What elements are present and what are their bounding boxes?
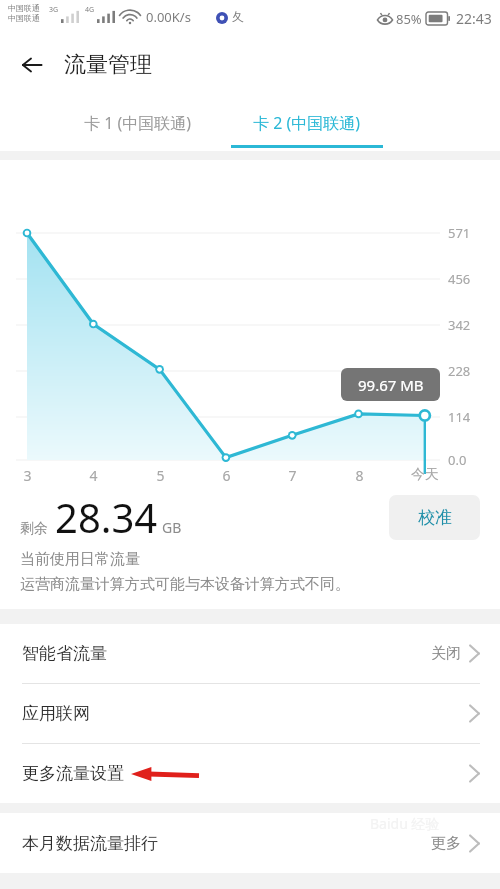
staticText: 卡 2 (中国联通): [253, 112, 361, 134]
staticText: 流量管理: [64, 51, 152, 79]
staticText: 5: [156, 466, 165, 485]
staticText: 99.67 MB: [358, 375, 424, 395]
staticText: 当前使用日常流量: [20, 550, 140, 569]
staticText: 本月数据流量排行: [22, 833, 158, 854]
staticText: 3: [23, 466, 32, 485]
staticText: 运营商流量计算方式可能与本设备计算方式不同。: [20, 575, 350, 594]
staticText: 夂: [232, 9, 244, 24]
staticText: GB: [162, 518, 182, 537]
staticText: 0.0: [448, 451, 467, 469]
staticText: 今天: [411, 466, 439, 484]
button[interactable]: 校准: [389, 495, 480, 540]
staticText: 关闭: [431, 644, 461, 663]
staticText: 剩余: [20, 520, 48, 538]
staticText: 中国联通: [8, 3, 40, 13]
staticText: 智能省流量: [22, 643, 107, 664]
button[interactable]: 更多流量设置: [0, 744, 500, 803]
button[interactable]: 更多: [431, 834, 480, 853]
staticText: 571: [448, 224, 471, 242]
staticText: 6: [222, 466, 231, 485]
staticText: 4: [89, 466, 98, 485]
staticText: 应用联网: [22, 703, 90, 724]
staticText: 22:43: [456, 9, 492, 28]
staticText: 114: [448, 408, 471, 426]
staticText: Baidu 经验: [370, 814, 440, 833]
staticText: 更多流量设置: [22, 763, 124, 784]
staticText: 中国联通: [8, 13, 40, 23]
button[interactable]: 卡 1 (中国联通): [60, 94, 215, 151]
button[interactable]: 卡 2 (中国联通): [229, 94, 384, 151]
staticText: 卡 1 (中国联通): [84, 112, 192, 134]
button[interactable]: Back: [10, 43, 54, 87]
staticText: 7: [288, 466, 297, 485]
staticText: 4G: [85, 5, 95, 15]
staticText: 8: [355, 466, 364, 485]
button[interactable]: 智能省流量: [0, 624, 500, 684]
staticText: 342: [448, 316, 471, 334]
staticText: 456: [448, 270, 471, 288]
staticText: 更多: [431, 834, 461, 853]
staticText: 85%: [396, 10, 422, 28]
staticText: 0.00K/s: [146, 8, 191, 26]
staticText: 28.34: [55, 490, 158, 544]
staticText: 校准: [418, 507, 452, 528]
staticText: 228: [448, 362, 471, 380]
staticText: 3G: [49, 5, 59, 15]
button[interactable]: 应用联网: [0, 684, 500, 744]
